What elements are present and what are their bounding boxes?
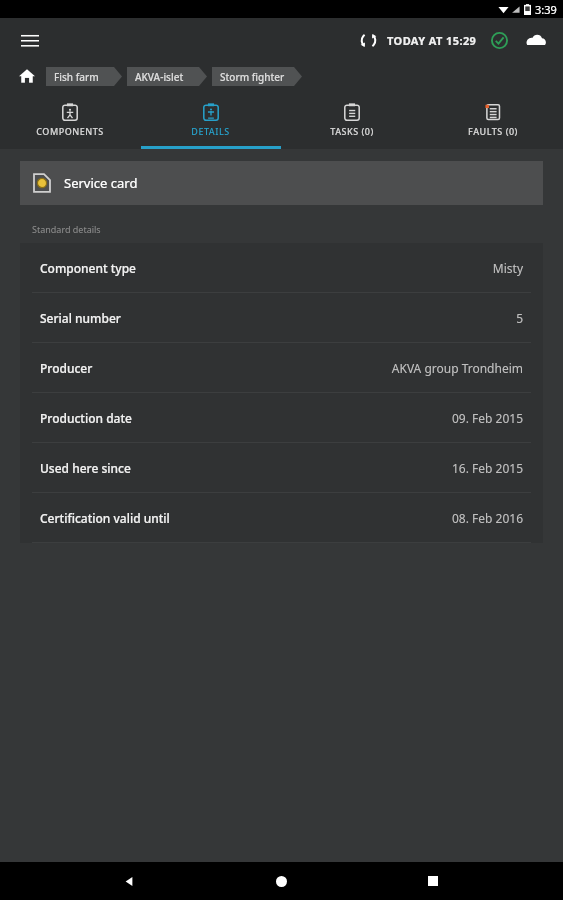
button[interactable]: COMPONENTS: [0, 96, 140, 149]
staticText: Certification valid until: [40, 510, 170, 526]
button[interactable]: Serial number: [20, 293, 543, 342]
button[interactable]: DETAILS: [140, 96, 281, 149]
staticText: Production date: [40, 410, 132, 426]
button[interactable]: Open navigation menu: [12, 22, 48, 58]
button[interactable]: Back: [107, 862, 151, 900]
button[interactable]: Production date: [20, 393, 543, 442]
staticText: Component type: [40, 260, 137, 276]
button[interactable]: Component type: [20, 243, 543, 292]
button[interactable]: Home: [14, 63, 40, 89]
staticText: Fish farm: [54, 70, 99, 84]
staticText: 3:39: [535, 2, 557, 17]
button[interactable]: Home: [259, 862, 303, 900]
staticText: TODAY AT 15:29: [387, 33, 477, 48]
staticText: Serial number: [40, 310, 121, 326]
staticText: TASKS (0): [330, 125, 374, 137]
staticText: Producer: [40, 360, 93, 376]
button[interactable]: Storm fighter: [212, 67, 302, 86]
staticText: AKVA-islet: [135, 70, 184, 84]
staticText: FAULTS (0): [468, 125, 518, 137]
button[interactable]: Cloud sync status: [521, 25, 551, 55]
staticText: Storm fighter: [220, 70, 285, 84]
button[interactable]: Status OK: [485, 26, 513, 54]
button[interactable]: Service card: [20, 161, 543, 205]
staticText: 08. Feb 2016: [451, 510, 523, 526]
button[interactable]: Certification valid until: [20, 493, 543, 542]
button[interactable]: Fish farm: [46, 67, 122, 86]
button[interactable]: FAULTS (0): [422, 96, 563, 149]
button[interactable]: Sync: [353, 25, 383, 55]
button[interactable]: Producer: [20, 343, 543, 392]
staticText: Used here since: [40, 460, 131, 476]
button[interactable]: TASKS (0): [281, 96, 422, 149]
staticText: 16. Feb 2015: [451, 460, 523, 476]
staticText: 09. Feb 2015: [451, 410, 523, 426]
staticText: Standard details: [32, 223, 101, 235]
staticText: AKVA group Trondheim: [391, 360, 523, 376]
staticText: Service card: [64, 174, 138, 192]
staticText: Misty: [492, 260, 523, 276]
button[interactable]: AKVA-islet: [127, 67, 207, 86]
button[interactable]: Recent apps: [411, 862, 455, 900]
button[interactable]: Used here since: [20, 443, 543, 492]
staticText: COMPONENTS: [36, 125, 104, 137]
staticText: DETAILS: [191, 125, 230, 137]
staticText: 5: [516, 310, 523, 326]
